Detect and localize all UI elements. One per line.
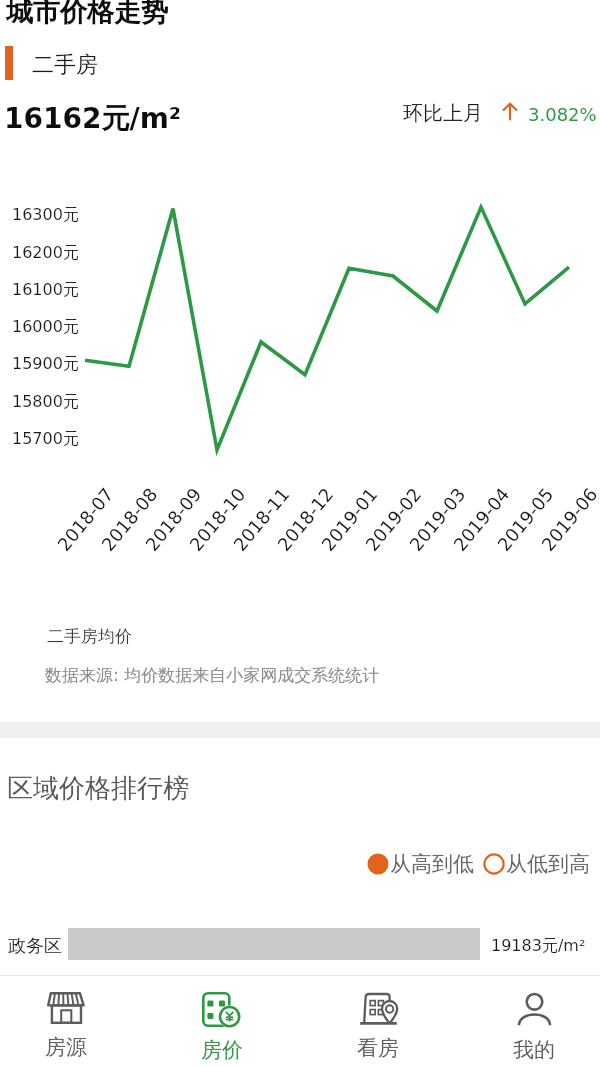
staticText: 房源 xyxy=(45,1034,87,1060)
staticText: 环比上月 xyxy=(403,101,483,126)
button[interactable]: 我的 xyxy=(456,975,600,1067)
staticText: 3.082% xyxy=(528,104,597,125)
staticText: 数据来源: 均价数据来自小家网成交系统统计 xyxy=(45,665,380,686)
staticText: 城市价格走势 xyxy=(6,0,168,29)
staticText: 房价 xyxy=(201,1037,243,1063)
staticText: 政务区 xyxy=(8,935,62,958)
button[interactable]: 看房 xyxy=(300,975,456,1067)
staticText: 从高到低 xyxy=(390,851,474,877)
staticText: 我的 xyxy=(513,1037,555,1063)
button[interactable]: 房价 xyxy=(144,975,300,1067)
staticText: 二手房 xyxy=(32,51,98,79)
staticText: 二手房均价 xyxy=(47,626,132,647)
staticText: 16162元/m² xyxy=(4,101,182,136)
staticText: 19183元/m² xyxy=(491,936,586,956)
button[interactable]: 从高到低 xyxy=(367,845,474,883)
staticText: 区域价格排行榜 xyxy=(7,772,189,805)
staticText: 看房 xyxy=(357,1035,399,1061)
button[interactable]: 从低到高 xyxy=(483,845,590,883)
staticText: 从低到高 xyxy=(506,851,590,877)
button[interactable]: 房源 xyxy=(0,975,144,1067)
button[interactable]: 政务区 xyxy=(0,906,600,982)
